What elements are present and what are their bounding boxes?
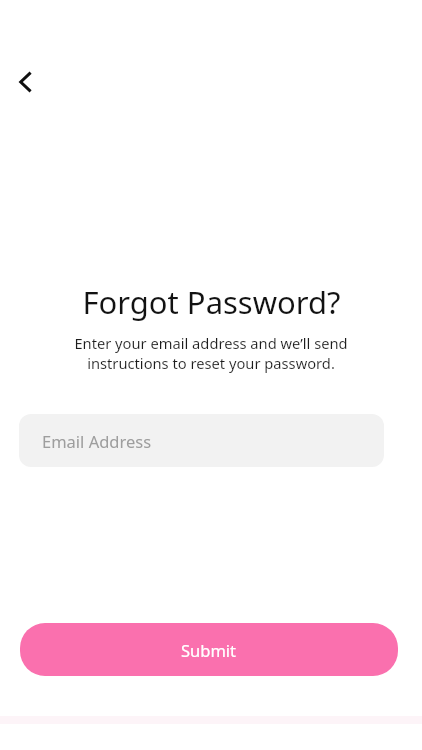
staticText: Email Address: [42, 430, 152, 452]
staticText: Submit: [181, 639, 237, 661]
button[interactable]: Submit: [20, 623, 398, 676]
button[interactable]: Email Address: [19, 414, 384, 467]
staticText: Forgot Password?: [82, 281, 341, 323]
button[interactable]: Back: [4, 60, 48, 104]
staticText: Enter your email address and we’ll send …: [74, 333, 348, 373]
